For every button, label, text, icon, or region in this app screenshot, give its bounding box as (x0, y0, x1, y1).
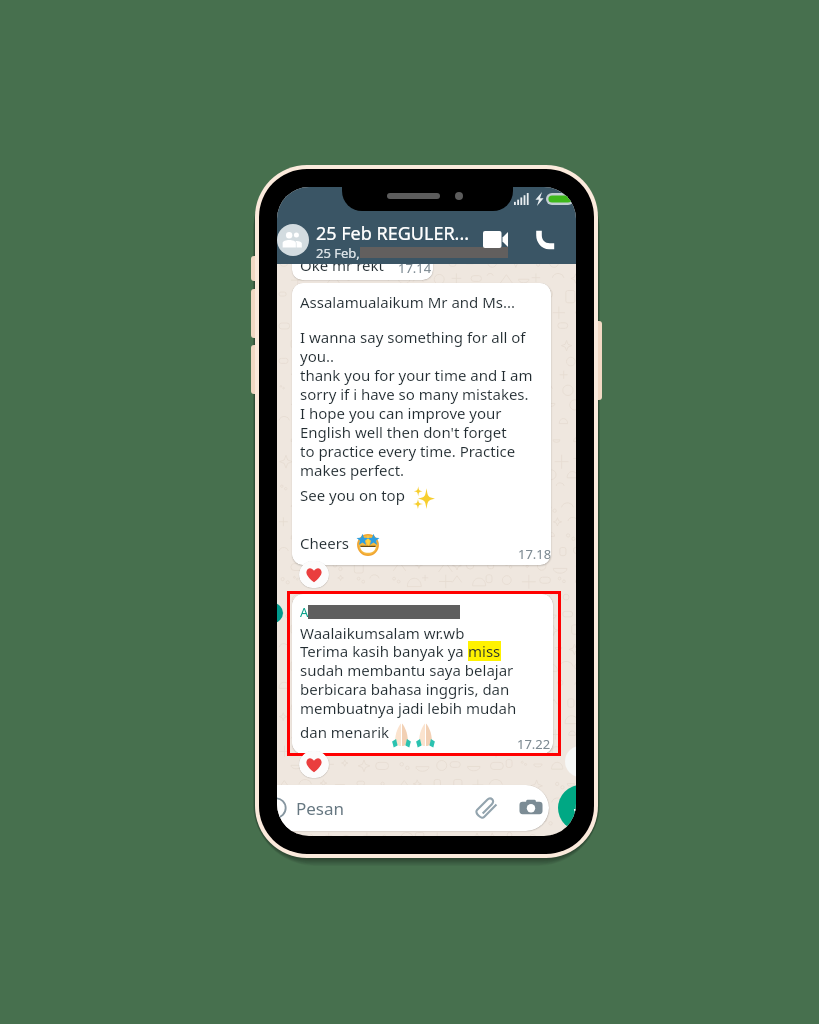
staticText: See you on top (300, 485, 405, 505)
button[interactable]: Assalamualaikum Mr and Ms... (292, 283, 551, 565)
staticText: 25 Feb REGULER... (316, 221, 470, 246)
staticText: Pesan (296, 797, 345, 820)
staticText: Terima kasih banyak ya (300, 641, 468, 661)
button[interactable]: 25 Feb REGULER... (277, 208, 576, 264)
button[interactable]: Heart reaction (299, 561, 329, 588)
staticText: sudah membantu saya belajar berbicara ba… (300, 660, 517, 718)
staticText: 17.18 (518, 545, 551, 563)
staticText: I wanna say something for all of you.. t… (300, 327, 533, 480)
button[interactable]: Camera (519, 797, 543, 819)
staticText: dan menarik (300, 722, 390, 742)
button[interactable]: Heart reaction (299, 751, 329, 778)
button[interactable]: Video call (483, 231, 508, 248)
button[interactable]: Attach file (473, 796, 498, 821)
staticText: Cheers (300, 533, 350, 553)
staticText: 17.22 (517, 735, 551, 753)
staticText: A (300, 603, 309, 621)
button[interactable]: Voice call (535, 230, 555, 250)
staticText: Assalamualaikum Mr and Ms... (300, 292, 516, 312)
button[interactable]: Send (558, 785, 576, 831)
button[interactable]: A (292, 594, 553, 754)
staticText: miss (468, 641, 501, 661)
staticText: Waalaikumsalam wr.wb (300, 623, 465, 643)
staticText: Oke mr rekt (300, 255, 384, 275)
button[interactable]: Scroll to bottom (565, 746, 576, 777)
staticText: 17.14 (398, 259, 432, 277)
staticText: 25 Feb, A (316, 244, 372, 262)
button[interactable]: Pesan (277, 785, 549, 831)
